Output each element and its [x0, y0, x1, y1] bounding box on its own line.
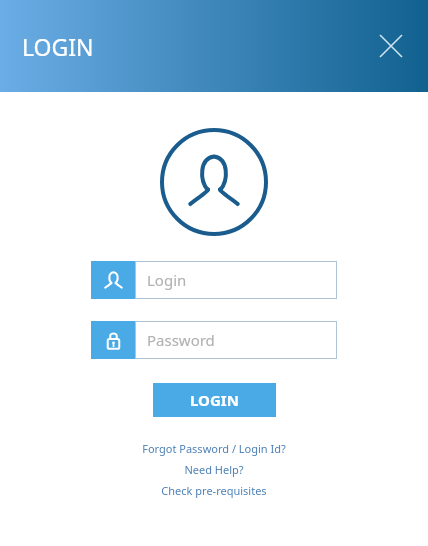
staticText: Forgot Password / Login Id? [142, 441, 286, 456]
staticText: Password [147, 330, 215, 350]
staticText: Need Help? [184, 462, 244, 477]
button[interactable]: Close [376, 31, 406, 61]
button[interactable]: Check pre-requisites [161, 483, 267, 498]
button[interactable]: Forgot Password / Login Id? [142, 441, 286, 456]
staticText: Login [147, 270, 187, 290]
button[interactable]: Login field [91, 261, 337, 299]
staticText: LOGIN [22, 31, 94, 62]
button[interactable]: Need Help? [184, 462, 244, 477]
button[interactable]: Password field [91, 321, 337, 359]
staticText: Check pre-requisites [161, 483, 267, 498]
button[interactable]: LOGIN [153, 383, 276, 417]
staticText: LOGIN [190, 390, 239, 410]
